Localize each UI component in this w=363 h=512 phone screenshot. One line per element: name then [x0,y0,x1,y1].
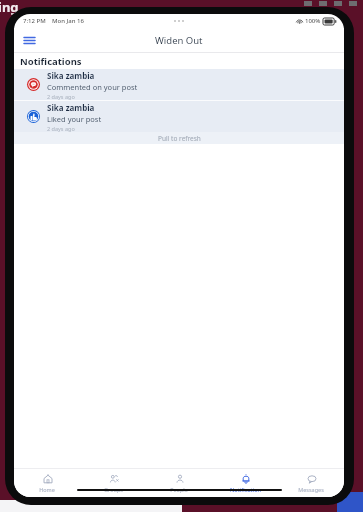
staticText: 100% [305,17,321,25]
staticText: People [170,486,188,493]
staticText: 7:12 PM [23,17,46,25]
staticText: 2 days ago [47,93,75,100]
staticText: Commented on your post [47,82,138,92]
staticText: Messages [298,486,324,493]
button[interactable]: Open navigation menu [18,29,40,51]
button[interactable]: Sika zambia [14,101,344,132]
staticText: Notifications [20,55,82,68]
staticText: Notification [230,486,261,493]
staticText: Groups [104,486,123,493]
staticText: Sika zambia [47,70,95,81]
staticText: Liked your post [47,114,102,124]
button[interactable]: Messages [278,469,344,497]
staticText: Pull to refresh [158,134,201,143]
button[interactable]: Sika zambia [14,69,344,100]
staticText: Sika zambia [47,102,95,113]
button[interactable]: Notification [212,469,278,497]
staticText: Mon Jan 16 [52,17,84,25]
button[interactable]: People [146,469,212,497]
staticText: 2 days ago [47,125,75,132]
button[interactable]: Groups [80,469,146,497]
staticText: Home [39,486,55,493]
staticText: Widen Out [155,34,203,47]
staticText: ing [0,0,19,16]
button[interactable]: Home [14,469,80,497]
